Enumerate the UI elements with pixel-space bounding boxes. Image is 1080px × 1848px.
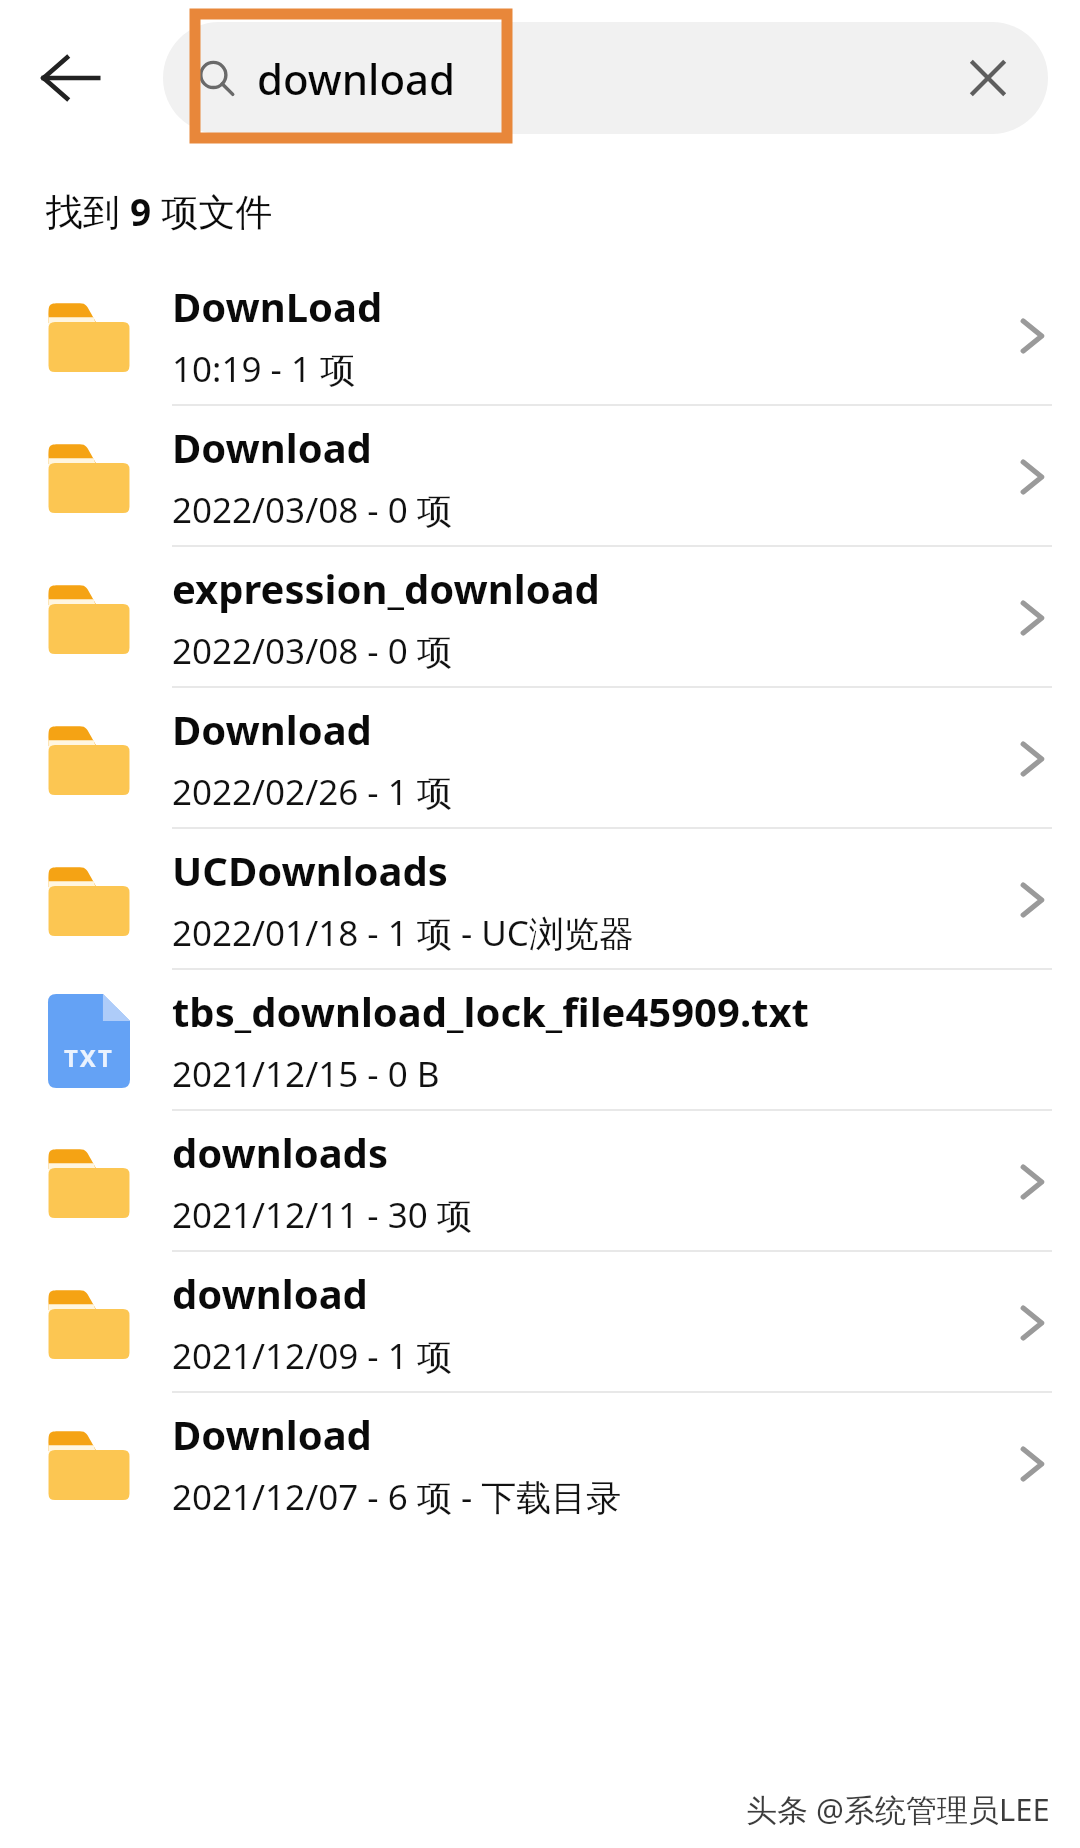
button[interactable]: download (163, 22, 1048, 134)
button[interactable]: Download (0, 1393, 1080, 1534)
staticText: Download (172, 420, 372, 474)
staticText: 项文件 (152, 185, 273, 236)
staticText: download (257, 50, 456, 107)
button[interactable]: Clear search (944, 34, 1032, 122)
staticText: expression_download (172, 561, 600, 615)
staticText: UCDownloads (172, 843, 448, 897)
staticText: 2022/01/18 - 1 项 - UC浏览器 (172, 909, 634, 957)
staticText: DownLoad (172, 279, 383, 333)
staticText: TXT (64, 1041, 114, 1074)
button[interactable]: download (0, 1252, 1080, 1393)
staticText: download (172, 1266, 368, 1320)
staticText: tbs_download_lock_file45909.txt (172, 984, 809, 1038)
button[interactable]: Download (0, 688, 1080, 829)
staticText: downloads (172, 1125, 388, 1179)
staticText: Download (172, 702, 372, 756)
staticText: 10:19 - 1 项 (172, 345, 356, 393)
button[interactable]: downloads (0, 1111, 1080, 1252)
staticText: 2021/12/11 - 30 项 (172, 1191, 472, 1239)
staticText: 2022/03/08 - 0 项 (172, 627, 452, 675)
staticText: 2022/02/26 - 1 项 (172, 768, 452, 816)
button[interactable]: TXT (0, 970, 1080, 1111)
staticText: Download (172, 1407, 372, 1461)
staticText: 头条 @系统管理员LEE (746, 1788, 1050, 1830)
button[interactable]: expression_download (0, 547, 1080, 688)
staticText: 找到 (46, 185, 130, 236)
staticText: 2021/12/09 - 1 项 (172, 1332, 452, 1380)
staticText: 2021/12/15 - 0 B (172, 1050, 440, 1098)
button[interactable]: UCDownloads (0, 829, 1080, 970)
staticText: 2022/03/08 - 0 项 (172, 486, 452, 534)
button[interactable]: DownLoad (0, 265, 1080, 406)
button[interactable]: Back (18, 26, 122, 130)
staticText: 2021/12/07 - 6 项 - 下载目录 (172, 1473, 622, 1521)
staticText: 9 (130, 186, 152, 236)
button[interactable]: Download (0, 406, 1080, 547)
